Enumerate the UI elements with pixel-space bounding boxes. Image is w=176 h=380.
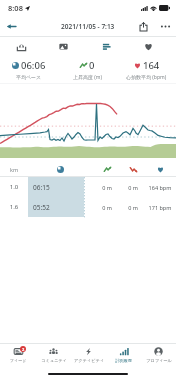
button[interactable]: Save (10, 37, 32, 56)
button[interactable]: Favorite (137, 37, 159, 56)
button[interactable]: アクティビティ (71, 347, 106, 363)
button[interactable]: プロフィール (141, 347, 176, 363)
staticText: 164 bpm (144, 184, 176, 191)
staticText: 心拍数平均 (bpm) (126, 74, 167, 81)
button[interactable]: 06:06 (0, 56, 58, 80)
staticText: 171 bpm (144, 204, 176, 211)
staticText: アクティビティ (74, 358, 104, 363)
staticText: 164 (143, 59, 160, 72)
staticText: フィード (9, 358, 27, 363)
staticText: 0 m (92, 184, 122, 191)
staticText: 平均ペース (16, 74, 42, 80)
staticText: 上昇高度 (m) (73, 74, 102, 81)
button[interactable]: More options (154, 16, 176, 36)
staticText: 06:15 (33, 183, 50, 192)
button[interactable]: Split times (95, 37, 117, 56)
button[interactable]: 2 (0, 347, 36, 363)
button[interactable]: 1.6 (0, 197, 176, 217)
staticText: プロフィール (146, 358, 172, 363)
staticText: 1.0 (0, 183, 28, 191)
staticText: km (0, 166, 28, 173)
staticText: 2021/11/05 - 7:13 (61, 22, 115, 31)
staticText: コミュニティ (41, 358, 67, 363)
button[interactable]: Photos (52, 37, 74, 56)
staticText: 8:08 (8, 3, 23, 13)
button[interactable]: 0 (58, 56, 117, 81)
staticText: 0 (89, 59, 95, 72)
button[interactable]: Back (0, 16, 22, 36)
button[interactable]: 計測履歴 (106, 347, 141, 363)
staticText: 06:06 (21, 59, 46, 72)
button[interactable]: Share (132, 16, 154, 36)
staticText: 0 m (92, 204, 122, 211)
staticText: 0 m (122, 204, 144, 211)
button[interactable]: 1.0 (0, 177, 176, 197)
button[interactable]: コミュニティ (36, 347, 71, 363)
staticText: 1.6 (0, 203, 28, 211)
staticText: 計測履歴 (115, 358, 132, 363)
staticText: 2 (22, 347, 25, 352)
staticText: 05:52 (33, 203, 50, 212)
button[interactable]: 164 (117, 56, 176, 81)
staticText: 0 m (122, 184, 144, 191)
